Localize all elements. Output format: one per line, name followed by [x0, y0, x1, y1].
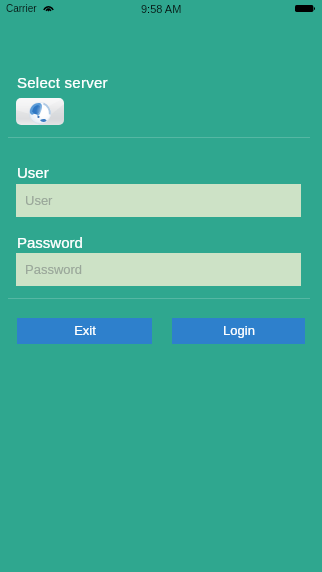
staticText: Carrier: [6, 3, 37, 14]
button[interactable]: User: [16, 184, 301, 217]
button[interactable]: Login: [172, 318, 305, 344]
staticText: Password: [25, 262, 83, 277]
button[interactable]: Exit: [17, 318, 152, 344]
staticText: 9:58 AM: [141, 3, 182, 15]
staticText: Select server: [17, 74, 108, 91]
button[interactable]: Select server: [16, 98, 64, 125]
staticText: User: [17, 164, 49, 181]
staticText: Exit: [74, 323, 96, 338]
staticText: Login: [223, 323, 255, 338]
staticText: User: [25, 193, 53, 208]
staticText: Password: [17, 234, 83, 251]
button[interactable]: Password: [16, 253, 301, 286]
